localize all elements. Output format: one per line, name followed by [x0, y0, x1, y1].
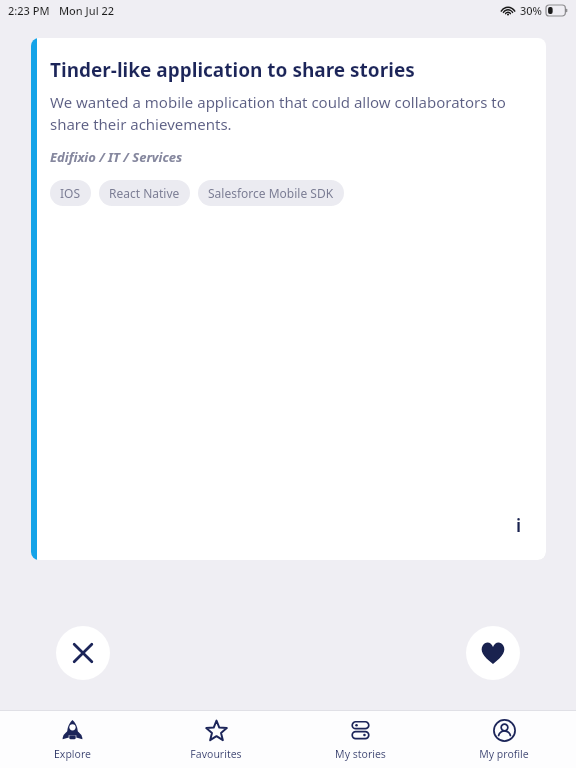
staticText: i	[516, 514, 522, 537]
button[interactable]: Tinder-like application to share stories	[31, 38, 546, 560]
button[interactable]: My profile	[432, 711, 576, 768]
staticText: React Native	[109, 185, 180, 201]
button[interactable]: More information	[506, 512, 532, 538]
staticText: Explore	[54, 747, 91, 761]
button[interactable]: Favourites	[144, 711, 288, 768]
staticText: Favourites	[190, 747, 242, 761]
button[interactable]: Like	[466, 626, 520, 680]
staticText: Salesforce Mobile SDK	[208, 185, 334, 201]
button[interactable]: Dismiss	[56, 626, 110, 680]
staticText: Edifixio / IT / Services	[50, 148, 183, 166]
staticText: My profile	[479, 747, 529, 761]
staticText: IOS	[60, 185, 81, 201]
staticText: Tinder-like application to share stories	[50, 57, 415, 83]
button[interactable]: IOS	[50, 180, 91, 206]
staticText: 2:23 PM	[8, 3, 50, 18]
staticText: We wanted a mobile application that coul…	[50, 92, 506, 135]
button[interactable]: Explore	[0, 711, 144, 768]
staticText: My stories	[335, 747, 386, 761]
button[interactable]: My stories	[288, 711, 432, 768]
button[interactable]: React Native	[99, 180, 190, 206]
staticText: Mon Jul 22	[59, 3, 115, 18]
staticText: 30%	[520, 3, 542, 18]
button[interactable]: Salesforce Mobile SDK	[198, 180, 344, 206]
